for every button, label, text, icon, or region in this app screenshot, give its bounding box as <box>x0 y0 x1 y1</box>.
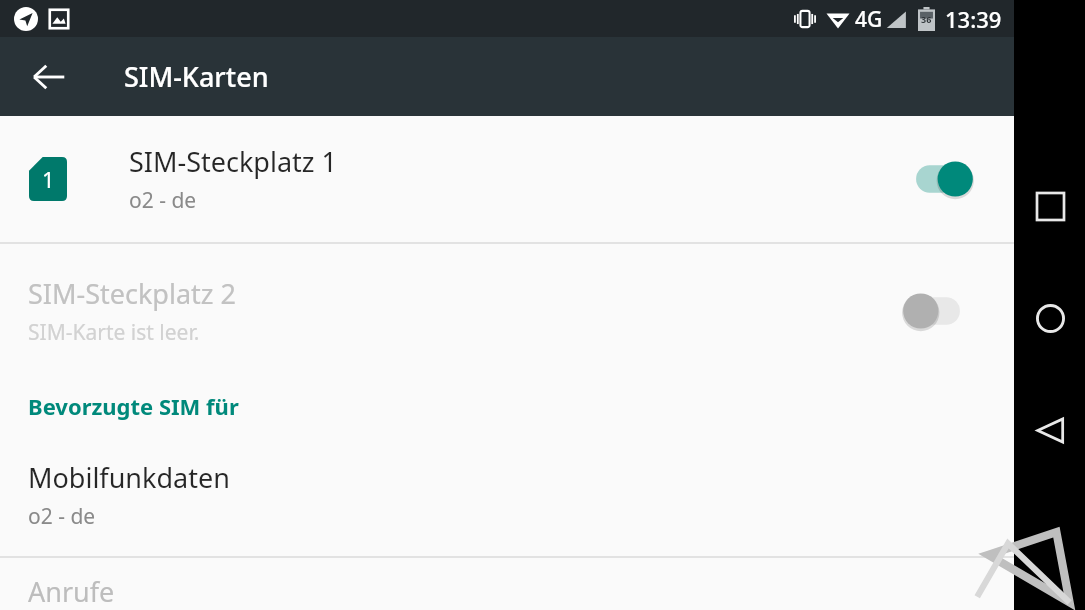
staticText: SIM-Steckplatz 2 <box>28 275 236 312</box>
staticText: SIM-Steckplatz 1 <box>129 143 337 180</box>
staticText: 4G <box>855 5 883 34</box>
staticText: SIM-Karten <box>124 58 269 95</box>
button[interactable]: Übersicht <box>1019 175 1081 237</box>
staticText: 36 <box>921 13 932 25</box>
button[interactable]: Mobilfunkdaten <box>0 434 1014 556</box>
button[interactable]: Zurück <box>18 46 80 108</box>
button[interactable]: Anrufe <box>0 558 1014 610</box>
staticText: SIM-Karte ist leer. <box>28 318 200 347</box>
staticText: 13:39 <box>945 4 1002 34</box>
button[interactable]: Zurück <box>1019 399 1081 461</box>
button[interactable]: SIM-Steckplatz 2 <box>0 244 1014 378</box>
staticText: o2 - de <box>28 502 96 531</box>
staticText: Bevorzugte SIM für <box>28 391 239 421</box>
staticText: Mobilfunkdaten <box>28 459 230 496</box>
staticText: 1 <box>42 164 55 194</box>
staticText: o2 - de <box>129 186 197 215</box>
button[interactable]: Startbildschirm <box>1019 287 1081 349</box>
staticText: Anrufe <box>28 573 115 610</box>
button[interactable]: 1 <box>0 116 1014 242</box>
